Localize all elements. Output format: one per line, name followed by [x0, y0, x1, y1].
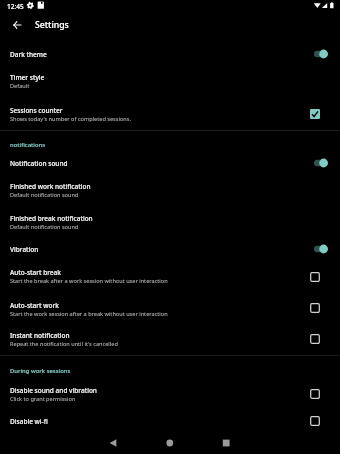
button[interactable]: Auto-start break	[0, 260, 340, 293]
staticText: Finished break notification	[10, 214, 93, 223]
button[interactable]: Unchecked	[310, 331, 340, 347]
button[interactable]: Unchecked	[310, 413, 340, 429]
button[interactable]: Disable sound and vibration	[0, 378, 340, 409]
button[interactable]: Checked	[310, 106, 340, 122]
staticText: Auto-start work	[10, 301, 59, 310]
button[interactable]: Toggle	[314, 46, 340, 62]
staticText: Sessions counter	[10, 106, 63, 115]
staticText: Start the work session after a break wit…	[10, 310, 168, 318]
button[interactable]: Auto-start work	[0, 293, 340, 323]
staticText: Default	[10, 82, 30, 90]
staticText: Click to grant permission	[10, 395, 76, 403]
button[interactable]: Toggle	[314, 241, 340, 257]
staticText: Timer style	[10, 73, 45, 82]
staticText: Dark theme	[10, 50, 47, 59]
staticText: Disable wi-fi	[10, 417, 48, 426]
staticText: Finished work notification	[10, 182, 91, 191]
button[interactable]: Disable wi-fi	[0, 409, 340, 432]
staticText: Notification sound	[10, 159, 68, 168]
staticText: Auto-start break	[10, 268, 61, 277]
button[interactable]: Unchecked	[310, 300, 340, 316]
staticText: Start the break after a work session wit…	[10, 277, 168, 285]
staticText: 12:45	[7, 2, 24, 11]
staticText: During work sessions	[10, 367, 71, 375]
button[interactable]: Dark theme	[0, 43, 340, 65]
button[interactable]: Vibration	[0, 238, 340, 260]
button[interactable]: Finished break notification	[0, 206, 340, 238]
button[interactable]: Back	[5, 14, 28, 35]
button[interactable]: Back	[95, 432, 125, 454]
button[interactable]: Home	[155, 432, 185, 454]
button[interactable]: Unchecked	[310, 386, 340, 402]
staticText: Default notification sound	[10, 223, 79, 231]
button[interactable]: Unchecked	[310, 269, 340, 285]
staticText: Settings	[35, 19, 69, 31]
button[interactable]: Toggle	[314, 155, 340, 171]
staticText: Shows today's number of completed sessio…	[10, 115, 131, 123]
button[interactable]: Timer style	[0, 65, 340, 98]
button[interactable]: Notification sound	[0, 151, 340, 174]
staticText: notifications	[10, 141, 46, 149]
staticText: Vibration	[10, 245, 39, 254]
staticText: Default notification sound	[10, 191, 79, 199]
button[interactable]: Sessions counter	[0, 98, 340, 130]
staticText: Disable sound and vibration	[10, 386, 97, 395]
button[interactable]: Finished work notification	[0, 174, 340, 206]
button[interactable]: Recents	[215, 432, 245, 454]
button[interactable]: Instant notification	[0, 323, 340, 355]
staticText: Repeat the notification until it's cance…	[10, 340, 118, 348]
staticText: Instant notification	[10, 331, 70, 340]
